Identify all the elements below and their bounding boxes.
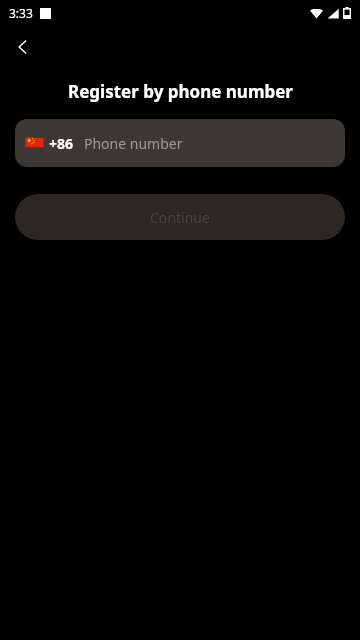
staticText: Continue (150, 208, 210, 227)
staticText: +86 (49, 134, 74, 153)
staticText: Phone number (84, 134, 183, 153)
button[interactable]: Continue (15, 194, 345, 240)
staticText: Register by phone number (68, 80, 293, 103)
staticText: 3:33 (9, 5, 33, 21)
button[interactable]: +86 (15, 119, 345, 167)
button[interactable]: Back (6, 30, 40, 64)
